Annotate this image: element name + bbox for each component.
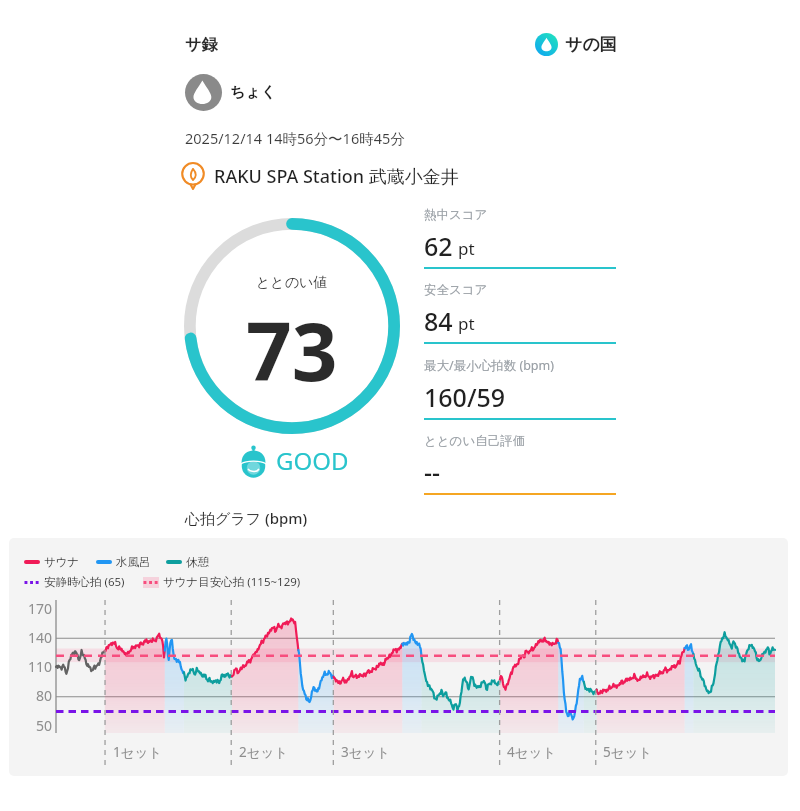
button[interactable]: GOOD [241, 444, 349, 477]
staticText: 140 [14, 628, 52, 647]
staticText: サウナ [44, 555, 80, 569]
staticText: 170 [14, 599, 52, 618]
staticText: 4セット [507, 743, 557, 761]
staticText: 安全スコア [424, 282, 488, 298]
button[interactable]: サの国 logo [535, 33, 617, 56]
staticText: 3セット [341, 743, 391, 761]
staticText: pt [458, 237, 475, 260]
staticText: ととのい自己評価 [424, 433, 526, 449]
staticText: 安静時心拍 (65) [44, 574, 125, 590]
staticText: 休憩 [186, 555, 209, 569]
button[interactable]: RAKU SPA Station 武蔵小金井 [179, 162, 459, 190]
staticText: 5セット [603, 743, 653, 761]
staticText: サ録 [185, 35, 218, 55]
button[interactable]: 熱中スコア [424, 207, 616, 282]
button[interactable]: 水風呂 [96, 555, 151, 569]
staticText: 心拍グラフ (bpm) [185, 508, 308, 528]
staticText: 2025/12/14 14時56分〜16時45分 [185, 128, 405, 148]
staticText: 熱中スコア [424, 207, 488, 223]
staticText: 最大/最小心拍数 (bpm) [424, 357, 554, 374]
staticText: 50 [14, 716, 52, 735]
button[interactable]: 安静時心拍 (65) [24, 574, 125, 590]
staticText: ちょく [230, 83, 277, 102]
staticText: -- [424, 455, 441, 489]
staticText: 2セット [239, 743, 289, 761]
button[interactable]: 休憩 [166, 555, 209, 569]
button[interactable]: 最大/最小心拍数 (bpm) [424, 357, 616, 433]
staticText: 84 [424, 304, 453, 338]
staticText: 160/59 [424, 380, 506, 414]
staticText: 80 [14, 686, 52, 705]
staticText: 73 [246, 295, 338, 404]
staticText: RAKU SPA Station 武蔵小金井 [214, 164, 459, 189]
staticText: 1セット [113, 743, 163, 761]
button[interactable]: サウナ目安心拍 (115~129) [143, 574, 301, 590]
staticText: pt [458, 312, 475, 335]
staticText: サの国 [565, 34, 617, 55]
staticText: 62 [424, 229, 453, 263]
staticText: 水風呂 [116, 555, 151, 569]
button[interactable]: 安全スコア [424, 282, 616, 357]
staticText: 110 [14, 657, 52, 676]
staticText: GOOD [276, 444, 349, 477]
button[interactable]: サウナ [24, 555, 80, 569]
button[interactable]: ちょく [185, 74, 277, 111]
staticText: サウナ目安心拍 (115~129) [163, 574, 301, 590]
staticText: ととのい値 [256, 274, 328, 292]
button[interactable]: ととのい自己評価 [424, 433, 616, 508]
